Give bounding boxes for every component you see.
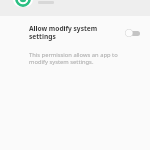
staticText: Allow modify system settings: [29, 24, 124, 41]
other: App icon: [13, 0, 33, 7]
button[interactable]: Allow modify system settings toggle: [124, 28, 141, 38]
staticText: This permission allows an app to modify …: [29, 51, 126, 66]
button[interactable]: Allow modify system settings: [0, 22, 150, 43]
